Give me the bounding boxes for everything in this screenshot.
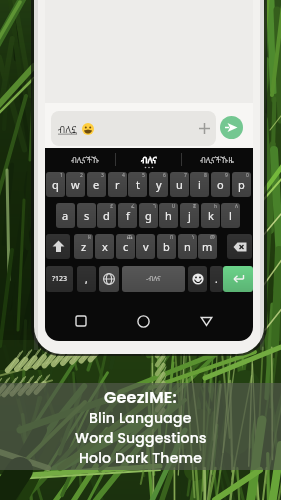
button[interactable]	[46, 234, 70, 259]
button[interactable]: -ብለና	[122, 266, 185, 292]
staticText: d	[103, 208, 110, 223]
staticText: i	[198, 177, 201, 192]
button[interactable]: v	[136, 234, 155, 259]
staticText: e	[93, 177, 100, 192]
staticText: ብሊናችኹ	[71, 154, 100, 165]
staticText: o	[217, 177, 224, 192]
button[interactable]: y	[149, 172, 168, 197]
button[interactable]: r	[108, 172, 127, 197]
staticText: 0	[246, 172, 249, 179]
staticText: n	[184, 239, 191, 254]
staticText: 7	[184, 172, 187, 179]
staticText: ሀ	[172, 203, 176, 210]
button[interactable]: p	[232, 172, 251, 197]
button[interactable]: z	[74, 234, 93, 259]
button[interactable]: s	[77, 203, 96, 228]
staticText: ,	[85, 272, 88, 286]
staticText: ብሊናችኹዜ	[200, 154, 234, 165]
button[interactable]	[220, 116, 243, 139]
staticText: ብለኗ	[58, 122, 78, 136]
staticText: 3	[101, 172, 104, 179]
button[interactable]: c	[116, 234, 135, 259]
staticText: k	[208, 208, 214, 223]
staticText: ደ	[110, 203, 114, 210]
staticText: 2	[80, 172, 83, 179]
button[interactable]	[223, 266, 253, 292]
staticText: ገ	[153, 203, 156, 210]
button[interactable]: ?123	[46, 266, 73, 292]
staticText: c	[123, 239, 129, 254]
button[interactable]: .	[210, 266, 223, 292]
staticText: ጀ	[193, 203, 197, 210]
staticText: q	[52, 177, 59, 192]
button[interactable]: ብሊናችኹ	[57, 150, 114, 168]
button[interactable]: a	[56, 203, 75, 228]
button[interactable]	[227, 234, 252, 259]
button[interactable]: l	[221, 203, 240, 228]
button[interactable]: j	[180, 203, 199, 228]
button[interactable]: o	[211, 172, 230, 197]
staticText: -ብለና	[146, 274, 161, 284]
staticText: ለ	[235, 203, 238, 210]
staticText: Holo Dark Theme	[79, 448, 203, 468]
staticText: 9	[225, 172, 228, 179]
staticText: ከ	[214, 203, 218, 210]
staticText: r	[115, 177, 120, 192]
staticText: Word Suggestions	[75, 428, 207, 448]
button[interactable]: w	[66, 172, 85, 197]
staticText: 5	[142, 172, 145, 179]
staticText: ፈ	[131, 203, 135, 210]
staticText: ነ	[192, 234, 195, 241]
button[interactable]: b	[157, 234, 176, 259]
button[interactable]: f	[118, 203, 137, 228]
button[interactable]: ብለና	[121, 150, 177, 168]
staticText: .	[215, 272, 218, 286]
button[interactable]: ብሊናችኹዜ	[185, 150, 249, 168]
button[interactable]: m	[198, 234, 217, 259]
staticText: መ	[210, 234, 215, 241]
staticText: ?123	[52, 274, 68, 284]
staticText: h	[165, 208, 172, 223]
staticText: b	[163, 239, 170, 254]
button[interactable]: e	[87, 172, 106, 197]
staticText: t	[136, 177, 140, 192]
staticText: 8	[204, 172, 207, 179]
staticText: 4	[122, 172, 125, 179]
staticText: l	[229, 208, 232, 223]
staticText: u	[176, 177, 183, 192]
staticText: g	[145, 208, 152, 223]
button[interactable]: d	[97, 203, 116, 228]
staticText: p	[238, 177, 245, 192]
staticText: ዘ	[88, 234, 91, 241]
staticText: በ	[170, 234, 174, 241]
button[interactable]	[75, 315, 87, 327]
staticText: j	[188, 208, 191, 223]
staticText: ጨ	[127, 234, 133, 241]
button[interactable]: ,	[77, 266, 96, 292]
staticText: ብለና	[141, 153, 157, 165]
button[interactable]	[188, 266, 207, 292]
staticText: 6	[163, 172, 166, 179]
button[interactable]	[137, 315, 150, 328]
staticText: GeezIME:	[104, 386, 177, 408]
button[interactable]: u	[170, 172, 189, 197]
button[interactable]: g	[139, 203, 158, 228]
button[interactable]: h	[159, 203, 178, 228]
staticText: z	[81, 239, 87, 254]
button[interactable]: x	[95, 234, 114, 259]
button[interactable]: t	[128, 172, 147, 197]
button[interactable]: i	[190, 172, 209, 197]
button[interactable]: ብለኗ	[51, 111, 216, 146]
staticText: 1	[60, 172, 63, 179]
staticText: m	[202, 239, 213, 254]
staticText: a	[62, 208, 69, 223]
button[interactable]: k	[201, 203, 220, 228]
button[interactable]: n	[178, 234, 197, 259]
staticText: v	[143, 239, 149, 254]
button[interactable]	[200, 315, 213, 328]
staticText: w	[71, 177, 80, 192]
button[interactable]: q	[46, 172, 65, 197]
staticText: f	[126, 208, 130, 223]
staticText: s	[84, 208, 90, 223]
button[interactable]	[99, 266, 119, 292]
